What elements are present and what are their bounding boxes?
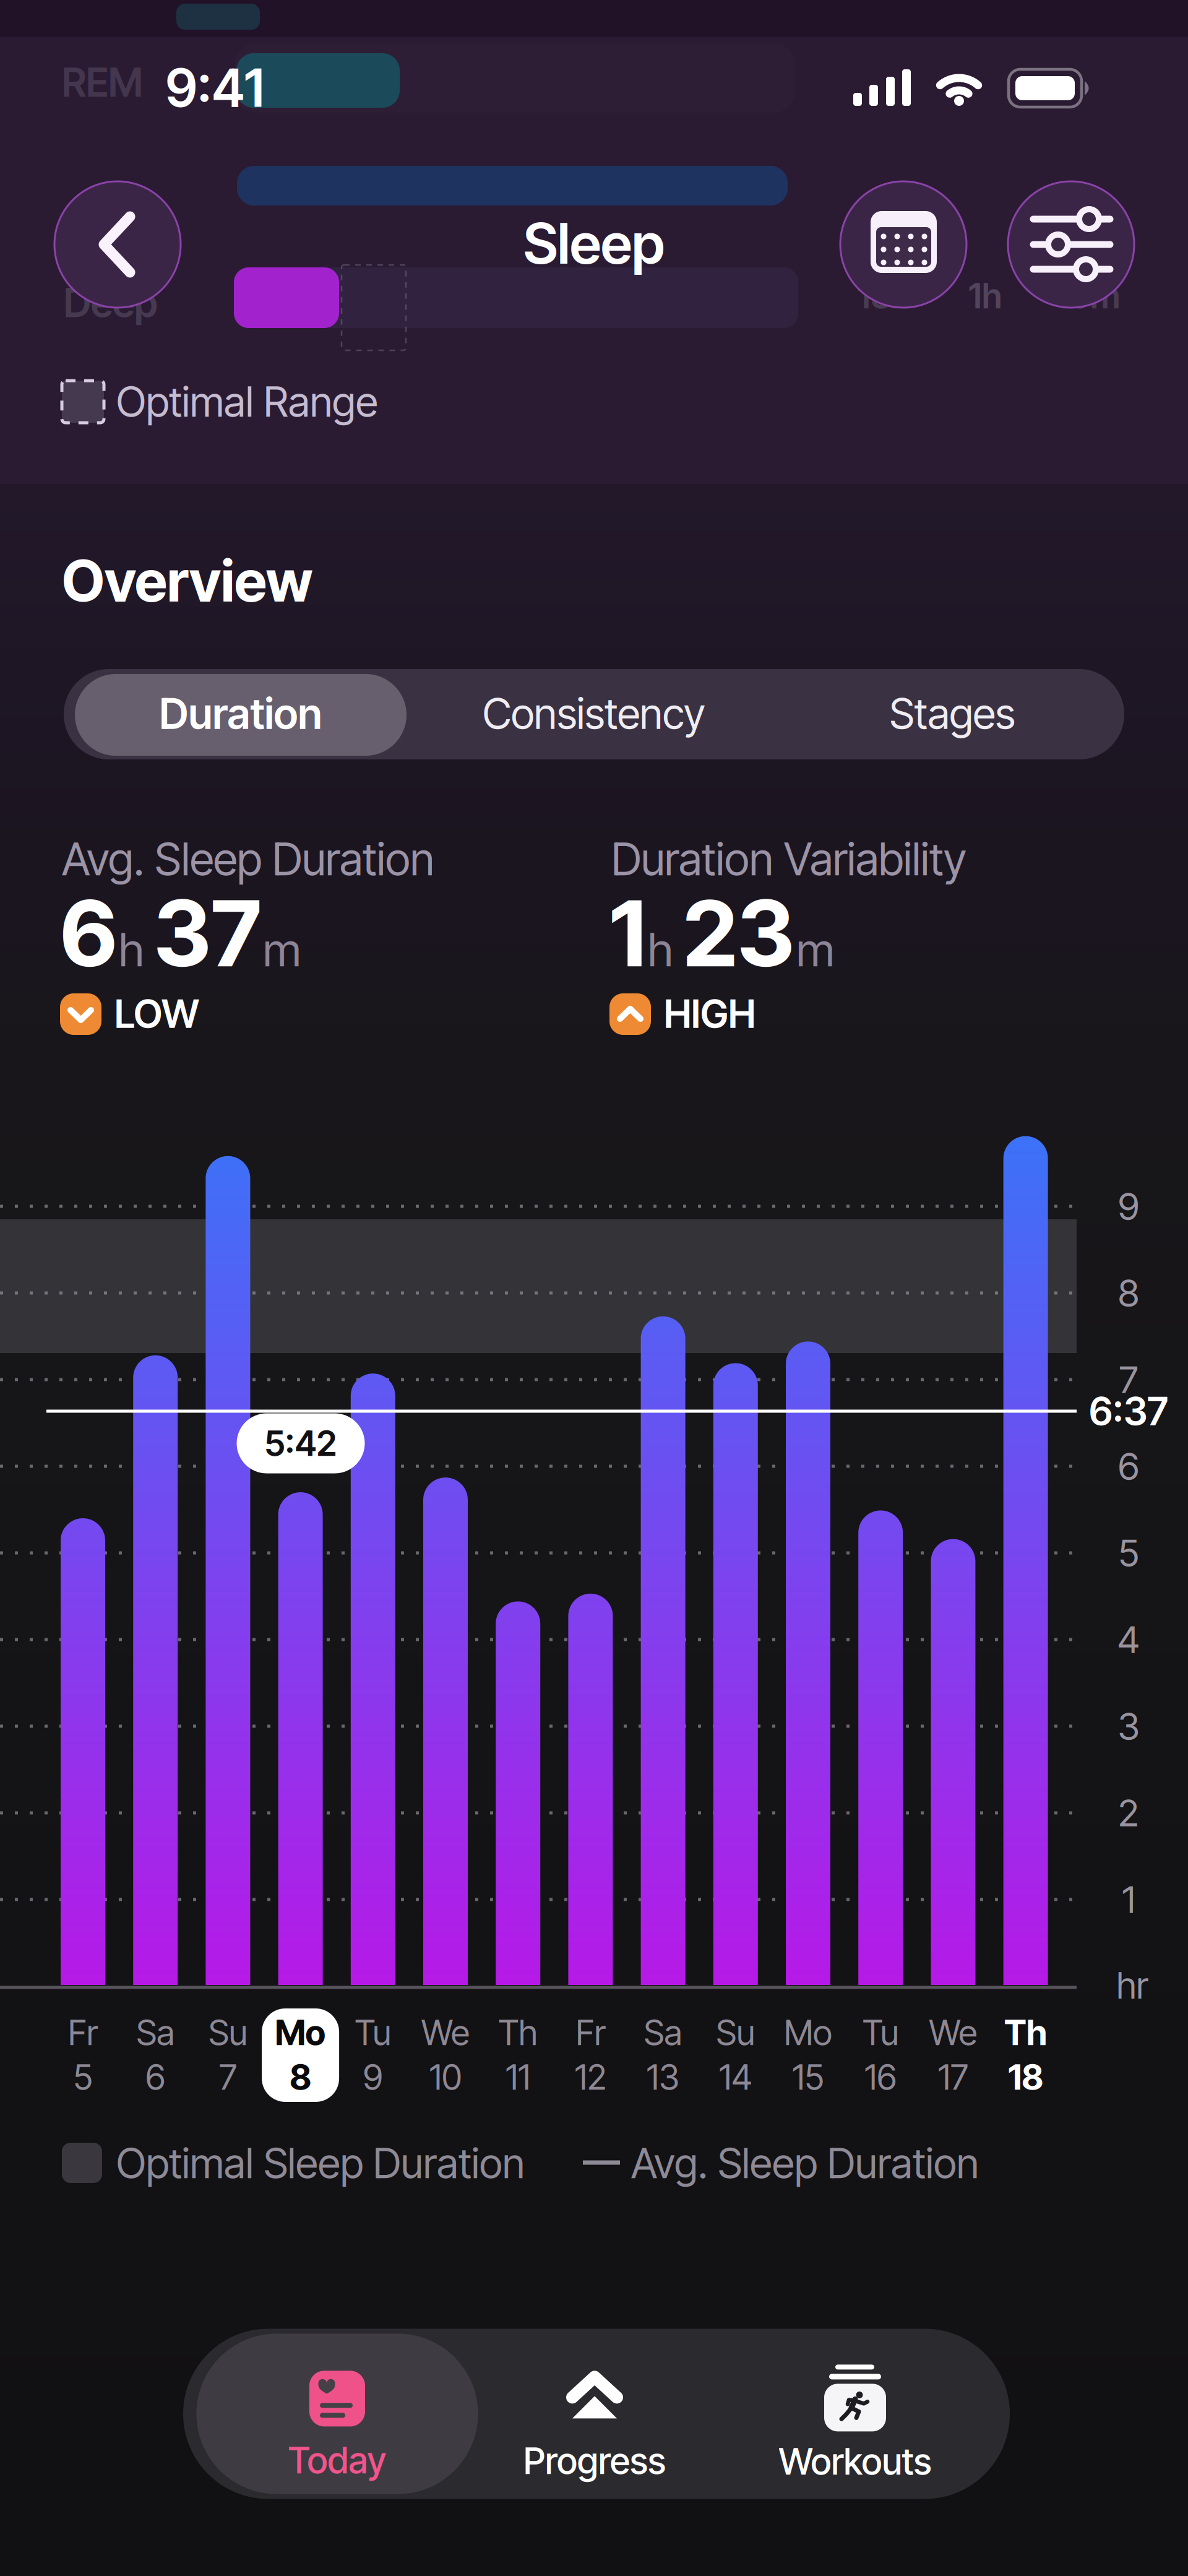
- staticText: 1: [609, 880, 646, 987]
- staticText: Th: [1004, 2012, 1047, 2053]
- staticText: 11: [506, 2057, 530, 2098]
- staticText: 6: [1118, 1444, 1139, 1488]
- staticText: Optimal Sleep Duration: [116, 2139, 525, 2187]
- button[interactable]: Th: [987, 2005, 1064, 2104]
- staticText: 13h: [857, 275, 911, 316]
- staticText: 6: [146, 2057, 165, 2098]
- staticText: 16: [865, 2057, 897, 2098]
- staticText: Duration: [159, 689, 322, 738]
- staticText: 9:41: [166, 57, 264, 119]
- staticText: m: [263, 922, 301, 977]
- staticText: Th: [498, 2012, 538, 2053]
- staticText: Fr: [576, 2012, 605, 2053]
- staticText: 7: [1119, 1358, 1138, 1402]
- button[interactable]: We: [914, 2005, 992, 2104]
- staticText: 2: [1118, 1791, 1139, 1835]
- staticText: Sa: [644, 2012, 682, 2053]
- staticText: 1: [1122, 1878, 1135, 1921]
- staticText: 6: [60, 880, 117, 987]
- staticText: 7: [219, 2057, 237, 2098]
- staticText: Sleep: [523, 210, 665, 276]
- staticText: We: [929, 2012, 977, 2053]
- staticText: Stages: [889, 689, 1015, 738]
- button[interactable]: Su: [697, 2005, 774, 2104]
- staticText: 8: [290, 2057, 311, 2098]
- button[interactable]: Back: [54, 181, 181, 308]
- staticText: Deep: [64, 279, 158, 326]
- staticText: HIGH: [664, 991, 755, 1037]
- staticText: 37: [154, 880, 261, 987]
- staticText: 10m: [1055, 275, 1120, 316]
- staticText: 10: [429, 2057, 462, 2098]
- staticText: Overview: [62, 547, 312, 614]
- staticText: 14: [719, 2057, 752, 2098]
- button[interactable]: Mo: [262, 2005, 339, 2104]
- staticText: 18: [1008, 2057, 1043, 2098]
- staticText: We: [421, 2012, 470, 2053]
- button[interactable]: Stages: [798, 670, 1107, 757]
- button[interactable]: Fr: [44, 2005, 122, 2104]
- staticText: 15: [792, 2057, 824, 2098]
- staticText: 23: [683, 880, 794, 987]
- staticText: LOW: [114, 991, 199, 1037]
- staticText: 8: [1118, 1271, 1139, 1315]
- staticText: h: [119, 922, 144, 977]
- staticText: Su: [716, 2012, 755, 2053]
- button[interactable]: Su: [189, 2005, 267, 2104]
- staticText: 9: [1118, 1184, 1139, 1228]
- button[interactable]: Sa: [624, 2005, 702, 2104]
- staticText: 13: [647, 2057, 679, 2098]
- button[interactable]: Workouts: [779, 2365, 932, 2483]
- staticText: 4: [1117, 1618, 1140, 1661]
- staticText: Workouts: [779, 2440, 932, 2483]
- staticText: 9: [363, 2057, 383, 2098]
- staticText: Optimal Range: [116, 377, 378, 426]
- staticText: 5: [1118, 1531, 1139, 1575]
- staticText: 1h: [968, 275, 1002, 316]
- button[interactable]: Progress: [523, 2371, 666, 2482]
- staticText: Consistency: [483, 689, 705, 738]
- staticText: hr: [1117, 1964, 1148, 2007]
- button[interactable]: Mo: [769, 2005, 847, 2104]
- button[interactable]: We: [407, 2005, 484, 2104]
- staticText: 6:37: [1089, 1388, 1168, 1434]
- staticText: Progress: [523, 2439, 666, 2482]
- staticText: Tu: [862, 2012, 899, 2053]
- staticText: Su: [208, 2012, 247, 2053]
- staticText: h: [648, 922, 673, 977]
- button[interactable]: Consistency: [427, 670, 761, 757]
- staticText: 12: [575, 2057, 606, 2098]
- button[interactable]: Tu: [334, 2005, 412, 2104]
- staticText: Today: [288, 2439, 386, 2482]
- staticText: Mo: [275, 2012, 326, 2053]
- button[interactable]: Fr: [552, 2005, 629, 2104]
- button[interactable]: Sa: [117, 2005, 194, 2104]
- staticText: Avg. Sleep Duration: [631, 2139, 979, 2187]
- staticText: m: [796, 922, 834, 977]
- staticText: Tu: [355, 2012, 391, 2053]
- staticText: 5:42: [265, 1423, 337, 1464]
- staticText: Mo: [784, 2012, 832, 2053]
- button[interactable]: Th: [479, 2005, 557, 2104]
- button[interactable]: Calendar: [840, 181, 966, 308]
- staticText: 5: [73, 2057, 93, 2098]
- button[interactable]: Today: [196, 2334, 478, 2494]
- staticText: Sa: [136, 2012, 175, 2053]
- button[interactable]: Tu: [842, 2005, 919, 2104]
- button[interactable]: Duration: [75, 674, 407, 756]
- staticText: Avg. Sleep Duration: [62, 833, 434, 885]
- staticText: 17: [938, 2057, 968, 2098]
- button[interactable]: Filters: [1008, 181, 1134, 308]
- staticText: Duration Variability: [611, 833, 966, 885]
- staticText: Fr: [68, 2012, 98, 2053]
- staticText: REM: [62, 59, 143, 106]
- staticText: 3: [1118, 1704, 1139, 1748]
